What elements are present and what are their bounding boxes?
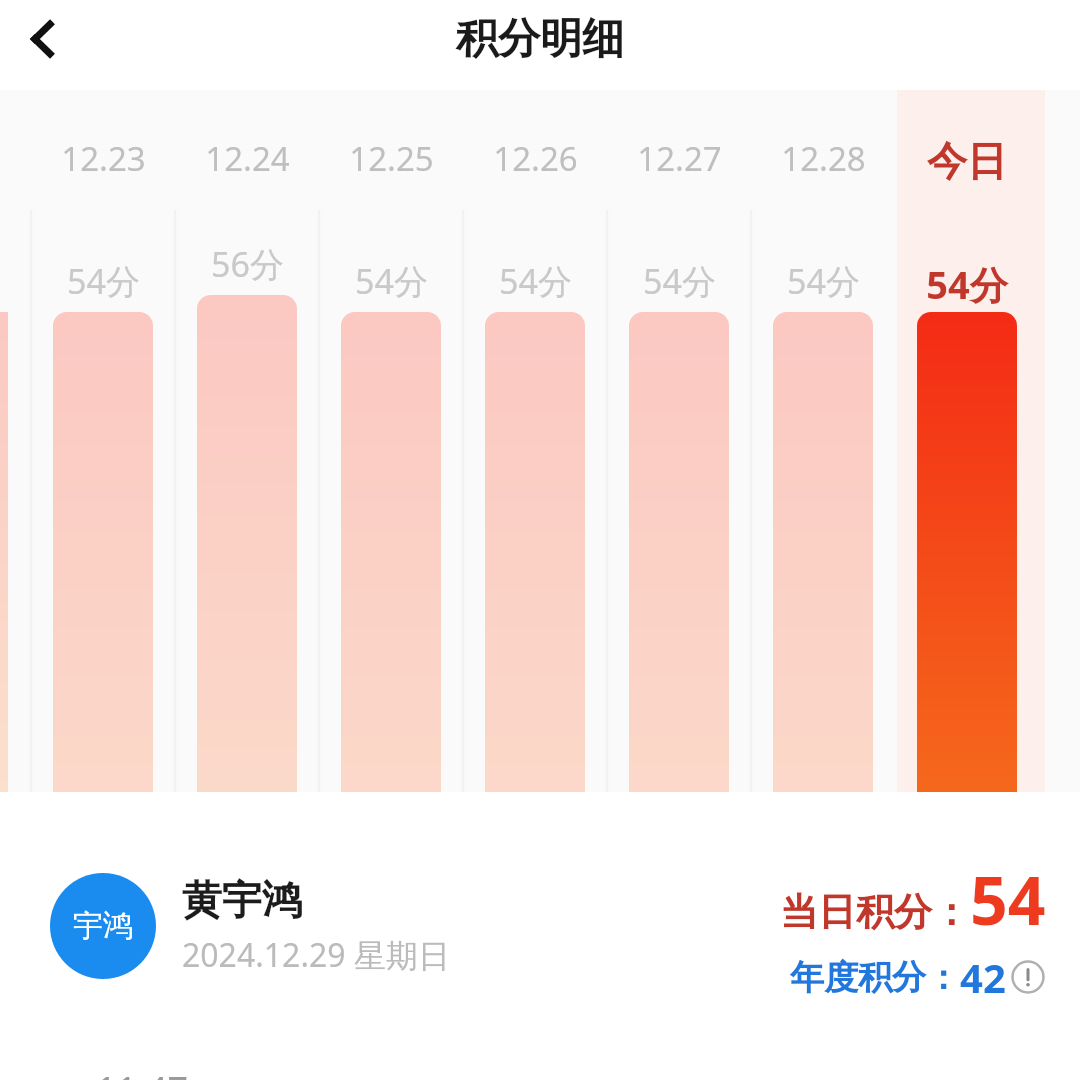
button[interactable] [585,90,729,792]
staticText: 黄宇鸿 [182,875,302,925]
button[interactable] [729,90,873,792]
staticText: 积分明细 [456,13,624,66]
button[interactable] [297,90,441,792]
button[interactable] [9,90,153,792]
staticText: 12.28 [781,136,866,181]
staticText: 年度积分： [790,956,960,999]
staticText: 54分 [787,258,860,304]
staticText: 12.24 [205,136,290,181]
staticText: 54分 [355,258,428,304]
button[interactable] [441,90,585,792]
staticText: 12.26 [493,136,578,181]
staticText: 54分 [643,258,716,304]
staticText: 54分 [67,258,140,304]
button[interactable]: Back [8,1,84,77]
staticText: 12.23 [61,136,146,181]
staticText: 54分 [926,258,1008,310]
staticText: 2024.12.29 星期日 [182,933,450,977]
other: Info [1010,959,1046,995]
staticText: 56分 [211,241,284,287]
staticText: 宇鸿 [73,907,133,945]
staticText: 12.27 [637,136,722,181]
button[interactable] [873,90,1017,792]
staticText: 54分 [499,258,572,304]
staticText: 今日 [927,136,1007,186]
staticText: 11:47 [96,1065,189,1080]
button[interactable]: 宇鸿 [50,873,450,979]
button[interactable]: 年度积分： [790,950,1046,1004]
staticText: 54 [970,854,1046,944]
staticText: 当日积分： [780,888,970,936]
staticText: 12.25 [349,136,434,181]
button[interactable] [153,90,297,792]
staticText: 42 [960,950,1006,1004]
